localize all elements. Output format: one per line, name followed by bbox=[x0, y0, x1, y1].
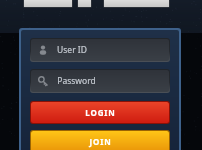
button[interactable]: Password bbox=[31, 70, 169, 92]
staticText: LOGIN bbox=[85, 107, 116, 118]
staticText: User ID bbox=[57, 44, 87, 56]
staticText: Password bbox=[57, 75, 96, 87]
button[interactable]: User bbox=[31, 39, 169, 61]
button[interactable]: JOIN bbox=[31, 131, 169, 150]
button[interactable]: LOGIN bbox=[31, 102, 169, 123]
staticText: JOIN bbox=[89, 136, 112, 147]
other: User bbox=[38, 45, 48, 55]
other: Password bbox=[38, 76, 48, 86]
